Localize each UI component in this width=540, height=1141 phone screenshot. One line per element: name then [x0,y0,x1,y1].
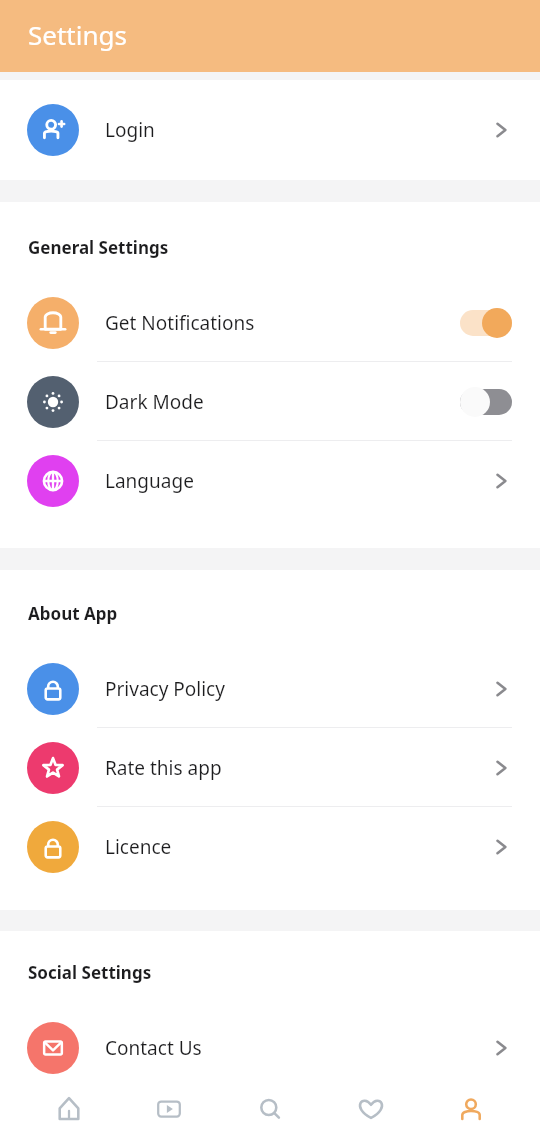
button[interactable]: Videos [137,1077,201,1141]
staticText: Licence [105,834,172,860]
button[interactable]: Dark Mode [0,362,540,441]
button[interactable]: Favourites [339,1077,403,1141]
staticText: Share App [105,1101,197,1127]
button[interactable]: Privacy Policy [0,649,540,728]
staticText: Privacy Policy [105,676,225,702]
staticText: General Settings [28,236,169,259]
button[interactable]: Home [37,1077,101,1141]
button[interactable]: Licence [0,807,540,886]
button[interactable]: Rate this app [0,728,540,807]
staticText: Rate this app [105,755,222,781]
button[interactable]: Share App [0,1087,540,1141]
staticText: About App [28,602,118,625]
staticText: Login [105,117,155,143]
staticText: Dark Mode [105,389,204,415]
button[interactable]: Contact Us [0,1008,540,1087]
button[interactable]: Search [238,1077,302,1141]
button[interactable]: Get Notifications [0,283,540,362]
staticText: Get Notifications [105,310,255,336]
staticText: Settings [28,17,127,52]
button[interactable]: Language [0,441,540,520]
staticText: Language [105,468,194,494]
staticText: Contact Us [105,1035,202,1061]
staticText: Social Settings [28,961,152,984]
button[interactable]: Login [0,80,540,180]
button[interactable]: Profile [439,1077,503,1141]
